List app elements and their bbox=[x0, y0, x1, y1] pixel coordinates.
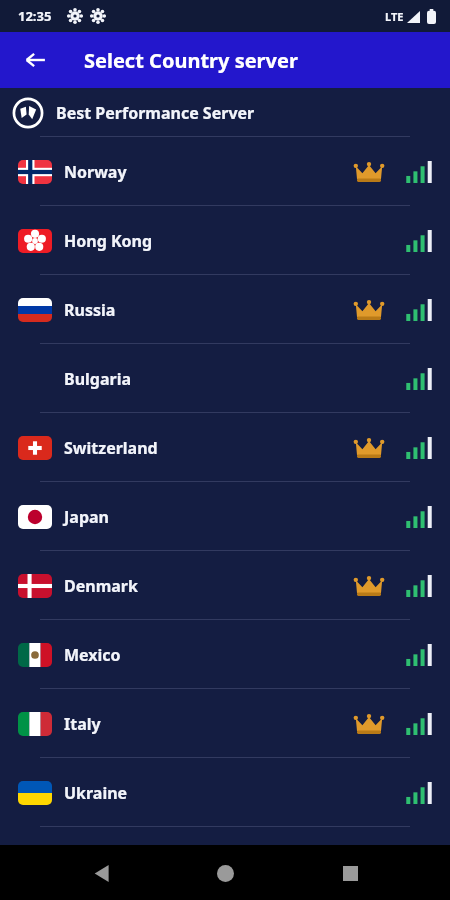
button[interactable]: Home bbox=[201, 849, 249, 897]
button[interactable]: Back bbox=[18, 43, 52, 77]
staticText: Best Performance Server bbox=[56, 102, 255, 124]
button[interactable]: Italy bbox=[0, 689, 450, 758]
staticText: Mexico bbox=[64, 644, 121, 666]
button[interactable]: Ukraine bbox=[0, 758, 450, 827]
staticText: Hong Kong bbox=[64, 230, 153, 252]
button[interactable]: Hong Kong bbox=[0, 206, 450, 275]
staticText: Norway bbox=[64, 161, 127, 183]
staticText: Italy bbox=[64, 713, 101, 735]
button[interactable]: Mexico bbox=[0, 620, 450, 689]
staticText: Japan bbox=[64, 506, 109, 528]
staticText: Switzerland bbox=[64, 437, 158, 459]
button[interactable]: Denmark bbox=[0, 551, 450, 620]
button[interactable]: Back bbox=[77, 849, 125, 897]
button[interactable]: Switzerland bbox=[0, 413, 450, 482]
button[interactable]: Japan bbox=[0, 482, 450, 551]
button[interactable]: Recents bbox=[326, 849, 374, 897]
staticText: LTE bbox=[385, 9, 404, 24]
staticText: Russia bbox=[64, 299, 116, 321]
button[interactable]: Bulgaria bbox=[0, 344, 450, 413]
staticText: Denmark bbox=[64, 575, 138, 597]
button[interactable]: Norway bbox=[0, 137, 450, 206]
button[interactable]: Best Performance Server bbox=[0, 88, 450, 137]
staticText: Select Country server bbox=[84, 47, 298, 74]
staticText: Ukraine bbox=[64, 782, 128, 804]
staticText: Bulgaria bbox=[64, 368, 132, 390]
staticText: 12:35 bbox=[18, 7, 52, 25]
button[interactable]: Russia bbox=[0, 275, 450, 344]
